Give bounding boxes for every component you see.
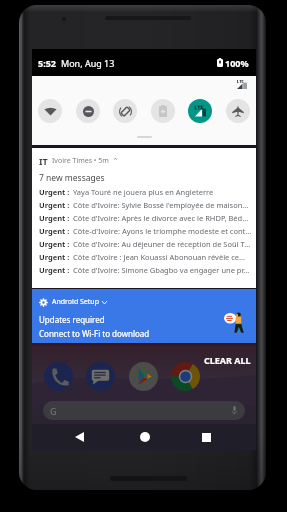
staticText: Urgent :	[39, 239, 70, 249]
staticText: Urgent :	[39, 226, 70, 236]
staticText: IT	[39, 155, 48, 167]
button[interactable]: Wi-Fi	[38, 99, 62, 123]
button[interactable]: G	[43, 401, 245, 420]
staticText: Connect to Wi-Fi to download	[39, 328, 150, 339]
button[interactable]: Battery saver	[151, 99, 175, 123]
staticText: CLEAR ALL	[204, 354, 251, 366]
staticText: Urgent :	[39, 252, 70, 262]
staticText: 5:52	[38, 57, 56, 69]
staticText: Android Setup	[52, 297, 99, 307]
staticText: Yaya Touré ne jouera plus en Angleterre	[73, 187, 214, 197]
staticText: 7 new messages	[39, 172, 105, 184]
staticText: Urgent :	[39, 213, 70, 223]
button[interactable]: Android Setup	[32, 289, 256, 343]
button[interactable]: Home	[134, 426, 156, 448]
button[interactable]: Airplane mode	[226, 99, 250, 123]
button[interactable]: Back	[68, 426, 90, 448]
button[interactable]: Mobile data	[188, 99, 212, 123]
staticText: Côte d'Ivoire : Jean Kouassi Abonouan ré…	[73, 252, 246, 262]
button[interactable]: Phone	[44, 362, 73, 391]
staticText: Côte d'Ivoire: Au déjeuner de réception …	[73, 239, 251, 249]
button[interactable]: Play Store	[129, 362, 158, 391]
staticText: Côte-d'Ivoire: Ayons le triomphe modeste…	[73, 226, 252, 236]
button[interactable]: Chrome	[171, 362, 200, 391]
staticText: Côte d'Ivoire: Sylvie Bossé l'employée d…	[73, 200, 249, 210]
staticText: Mon, Aug 13	[61, 57, 115, 69]
staticText: Urgent :	[39, 200, 70, 210]
button[interactable]: Do not disturb	[76, 99, 100, 123]
button[interactable]: Messages	[86, 362, 115, 391]
staticText: Urgent :	[39, 265, 70, 275]
staticText: Côte d'Ivoire: Après le divorce avec le …	[73, 213, 249, 223]
staticText: Urgent :	[39, 187, 70, 197]
button[interactable]: Recents	[195, 426, 217, 448]
staticText: Updates required	[39, 314, 105, 325]
staticText: Côte d'Ivoire: Simone Gbagbo va engager …	[73, 265, 250, 275]
staticText: Ivoire Times • 5m ⌃	[52, 156, 119, 166]
button[interactable]: Auto rotate	[113, 99, 137, 123]
button[interactable]: IT	[32, 148, 256, 288]
button[interactable]: CLEAR ALL	[199, 352, 256, 368]
staticText: 100%	[225, 57, 249, 69]
staticText: G	[50, 405, 57, 417]
